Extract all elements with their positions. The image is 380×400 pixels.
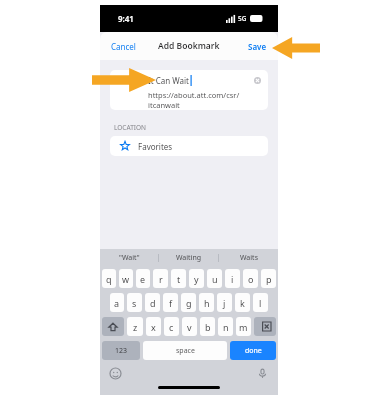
button[interactable]: p bbox=[261, 269, 276, 288]
staticText: "Wait" bbox=[119, 253, 140, 263]
staticText: k bbox=[240, 297, 245, 309]
staticText: It Can Wait bbox=[148, 75, 189, 86]
button[interactable]: o bbox=[243, 269, 258, 288]
staticText: Waiting bbox=[176, 253, 202, 263]
button[interactable]: w bbox=[119, 269, 133, 288]
staticText: m bbox=[239, 321, 248, 333]
staticText: v bbox=[187, 321, 192, 333]
staticText: done bbox=[245, 346, 262, 356]
button[interactable]: Dictate bbox=[257, 368, 268, 379]
staticText: r bbox=[159, 273, 163, 285]
staticText: 123 bbox=[115, 346, 128, 356]
button[interactable]: b bbox=[200, 317, 215, 336]
staticText: g bbox=[186, 297, 192, 309]
button[interactable]: Cancel bbox=[100, 35, 147, 58]
staticText: u bbox=[212, 273, 218, 285]
button[interactable]: u bbox=[207, 269, 222, 288]
button[interactable]: It Can Wait bbox=[110, 70, 268, 110]
button[interactable]: t bbox=[171, 269, 186, 288]
staticText: n bbox=[223, 321, 229, 333]
button[interactable]: 123 bbox=[102, 341, 140, 360]
staticText: s bbox=[132, 297, 137, 309]
button[interactable]: Waiting bbox=[159, 249, 218, 266]
button[interactable]: k bbox=[235, 293, 250, 312]
button[interactable]: j bbox=[217, 293, 232, 312]
button[interactable]: e bbox=[136, 269, 150, 288]
button[interactable]: Emoji bbox=[110, 368, 121, 379]
staticText: p bbox=[266, 273, 272, 285]
button[interactable]: r bbox=[153, 269, 168, 288]
button[interactable]: Backspace bbox=[254, 317, 276, 336]
button[interactable]: f bbox=[163, 293, 178, 312]
button[interactable]: Shift bbox=[102, 317, 124, 336]
staticText: Add Bookmark bbox=[158, 40, 220, 52]
staticText: i bbox=[231, 273, 234, 285]
button[interactable]: l bbox=[253, 293, 268, 312]
button[interactable]: n bbox=[218, 317, 233, 336]
button[interactable]: y bbox=[189, 269, 204, 288]
button[interactable]: space bbox=[143, 341, 227, 360]
button[interactable]: i bbox=[225, 269, 240, 288]
staticText: z bbox=[133, 321, 138, 333]
button[interactable]: z bbox=[127, 317, 143, 336]
staticText: space bbox=[176, 346, 195, 356]
staticText: Cancel bbox=[111, 41, 136, 52]
staticText: https://about.att.com/csr/itcanwait bbox=[148, 90, 268, 110]
staticText: a bbox=[114, 297, 120, 309]
staticText: x bbox=[151, 321, 156, 333]
button[interactable]: q bbox=[102, 269, 116, 288]
button[interactable]: Save bbox=[237, 35, 278, 58]
staticText: e bbox=[140, 273, 146, 285]
staticText: j bbox=[223, 297, 226, 309]
button[interactable]: g bbox=[181, 293, 196, 312]
staticText: d bbox=[150, 297, 156, 309]
staticText: f bbox=[169, 297, 173, 309]
staticText: 5G bbox=[238, 14, 247, 23]
button[interactable]: Waits bbox=[219, 249, 278, 266]
button[interactable]: m bbox=[236, 317, 251, 336]
button[interactable]: x bbox=[146, 317, 161, 336]
button[interactable]: s bbox=[127, 293, 142, 312]
staticText: t bbox=[177, 273, 181, 285]
staticText: q bbox=[106, 273, 112, 285]
staticText: y bbox=[194, 273, 199, 285]
button[interactable]: h bbox=[199, 293, 214, 312]
staticText: h bbox=[204, 297, 210, 309]
staticText: c bbox=[169, 321, 174, 333]
staticText: LOCATION bbox=[114, 123, 146, 132]
button[interactable]: "Wait" bbox=[100, 249, 158, 266]
button[interactable]: done bbox=[230, 341, 276, 360]
staticText: o bbox=[248, 273, 254, 285]
staticText: Favorites bbox=[138, 141, 173, 152]
staticText: l bbox=[259, 297, 262, 309]
staticText: 9:41 bbox=[118, 13, 134, 24]
staticText: w bbox=[122, 273, 130, 285]
staticText: Save bbox=[248, 41, 267, 52]
button[interactable]: v bbox=[182, 317, 197, 336]
staticText: b bbox=[205, 321, 211, 333]
button[interactable]: d bbox=[145, 293, 160, 312]
button[interactable]: a bbox=[110, 293, 124, 312]
button[interactable]: Favorites bbox=[110, 136, 268, 156]
button[interactable]: c bbox=[164, 317, 179, 336]
staticText: Waits bbox=[240, 253, 258, 263]
